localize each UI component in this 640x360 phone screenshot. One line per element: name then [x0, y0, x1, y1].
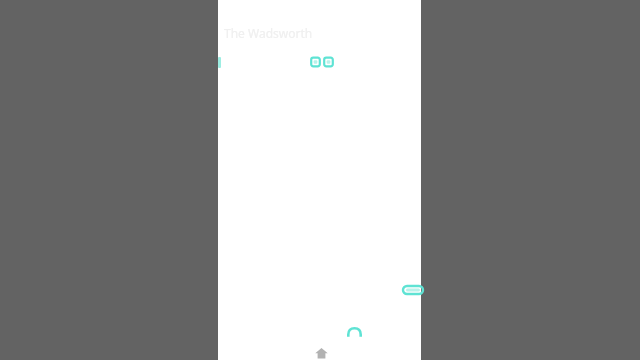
button[interactable]: The Wadsworth Atheneum: [224, 25, 374, 41]
button[interactable]: Action chip: [403, 285, 423, 295]
button[interactable]: List view: [323, 55, 334, 69]
button[interactable]: Home: [315, 347, 328, 359]
button[interactable]: Bookmark: [347, 327, 362, 338]
staticText: The Wadsworth Atheneum: [224, 25, 374, 41]
button[interactable]: Grid view: [310, 55, 321, 69]
